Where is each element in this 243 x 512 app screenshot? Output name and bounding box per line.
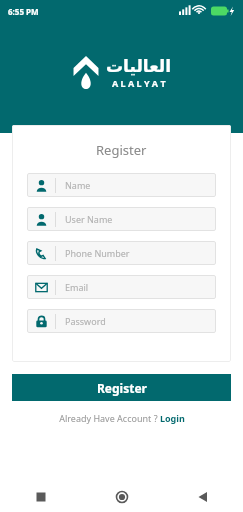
button[interactable]: Email	[27, 275, 216, 299]
button[interactable]: Already Have Account ? Login	[12, 412, 231, 424]
button[interactable]: Name	[27, 173, 216, 197]
staticText: Already Have Account ? Login	[59, 412, 185, 424]
staticText: A L A L Y A T	[112, 77, 166, 89]
staticText: Register	[97, 380, 147, 396]
staticText: 6:55 PM	[8, 6, 39, 17]
staticText: User Name	[65, 213, 113, 225]
staticText: Name	[65, 179, 91, 191]
button[interactable]: Recent apps	[0, 482, 81, 512]
staticText: Password	[65, 315, 106, 327]
staticText: العاليات	[106, 56, 171, 76]
button[interactable]: User Name	[27, 207, 216, 231]
button[interactable]: Home	[81, 482, 162, 512]
staticText: Phone Number	[65, 247, 130, 259]
staticText: Register	[96, 141, 147, 159]
button[interactable]: Phone Number	[27, 241, 216, 265]
staticText: Email	[65, 281, 89, 293]
button[interactable]: Back	[162, 482, 243, 512]
button[interactable]: Password	[27, 309, 216, 333]
button[interactable]: Register	[12, 374, 231, 401]
